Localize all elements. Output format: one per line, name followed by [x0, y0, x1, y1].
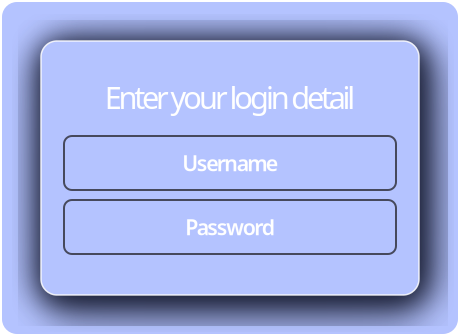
staticText: Password — [185, 213, 275, 241]
staticText: Enter your login detail — [105, 77, 355, 117]
staticText: Username — [182, 149, 278, 177]
button[interactable]: Username — [64, 136, 396, 190]
button[interactable]: Password — [64, 200, 396, 254]
